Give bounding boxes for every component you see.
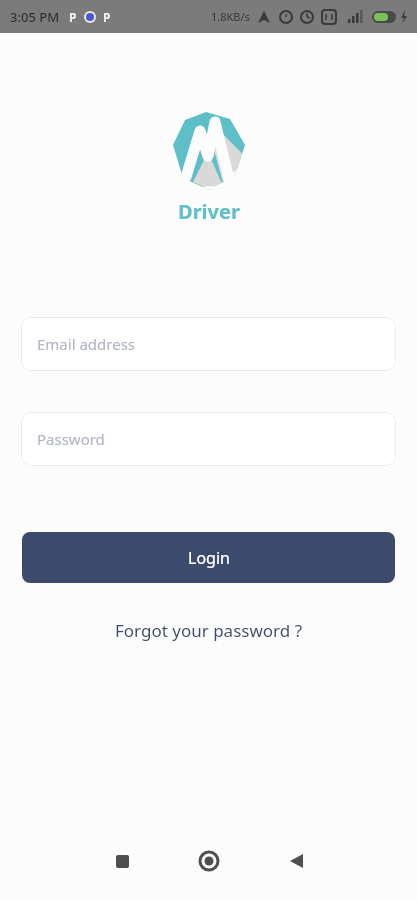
staticText: Login xyxy=(188,547,230,569)
button[interactable] xyxy=(185,837,233,885)
staticText: P xyxy=(103,9,111,25)
staticText: Forgot your password ? xyxy=(115,619,303,642)
button[interactable] xyxy=(272,837,320,885)
staticText: Driver xyxy=(178,198,240,225)
staticText: Password xyxy=(37,429,105,449)
staticText: P xyxy=(69,9,77,25)
button[interactable]: Email address xyxy=(21,317,396,371)
staticText: 1.8KB/s xyxy=(211,9,250,24)
staticText: 3:05 PM xyxy=(10,8,60,26)
button[interactable]: Login xyxy=(22,532,395,583)
button[interactable] xyxy=(98,837,146,885)
button[interactable]: Password xyxy=(21,412,396,466)
button[interactable]: Forgot your password ? xyxy=(115,619,303,642)
staticText: Email address xyxy=(37,334,136,354)
